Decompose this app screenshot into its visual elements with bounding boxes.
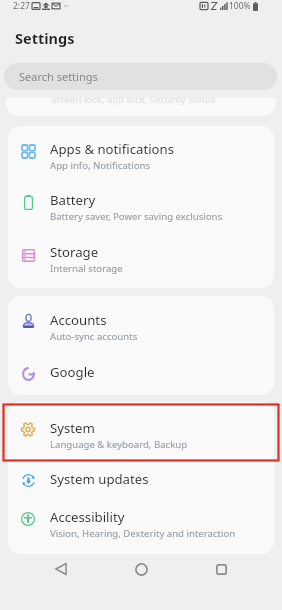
button[interactable]: Google — [8, 351, 274, 395]
staticText: Accounts — [50, 311, 107, 329]
button[interactable]: Home — [126, 554, 156, 584]
staticText: Language & keyboard, Backup — [50, 438, 188, 451]
staticText: Storage — [50, 243, 99, 261]
button[interactable]: Recent apps — [206, 554, 236, 584]
button[interactable]: System updates — [8, 456, 274, 496]
button[interactable]: Accessibility — [8, 496, 274, 554]
staticText: Google — [50, 363, 95, 381]
button[interactable]: System — [8, 402, 274, 456]
button[interactable]: Accounts — [8, 296, 274, 351]
staticText: System updates — [50, 470, 149, 488]
staticText: App info, Notifications — [50, 159, 151, 172]
staticText: Apps & notifications — [50, 140, 175, 158]
staticText: Auto-sync accounts — [50, 330, 138, 343]
staticText: Battery — [50, 191, 96, 209]
staticText: Settings — [15, 28, 75, 48]
staticText: Accessibility — [50, 508, 125, 526]
button[interactable]: Search settings — [4, 63, 277, 90]
staticText: 2:27 — [13, 0, 30, 12]
staticText: Screen lock, app lock, Security status — [51, 98, 216, 106]
staticText: Internal storage — [50, 262, 123, 275]
staticText: 100% — [229, 0, 251, 12]
button[interactable]: Back — [46, 554, 76, 584]
staticText: Battery saver, Power saving exclusions — [50, 210, 223, 223]
staticText: System — [50, 419, 95, 437]
button[interactable]: Storage — [8, 232, 274, 288]
staticText: Vision, Hearing, Dexterity and interacti… — [50, 527, 236, 540]
staticText: Search settings — [19, 69, 98, 84]
button[interactable]: Apps & notifications — [8, 126, 274, 179]
button[interactable]: Battery — [8, 179, 274, 232]
